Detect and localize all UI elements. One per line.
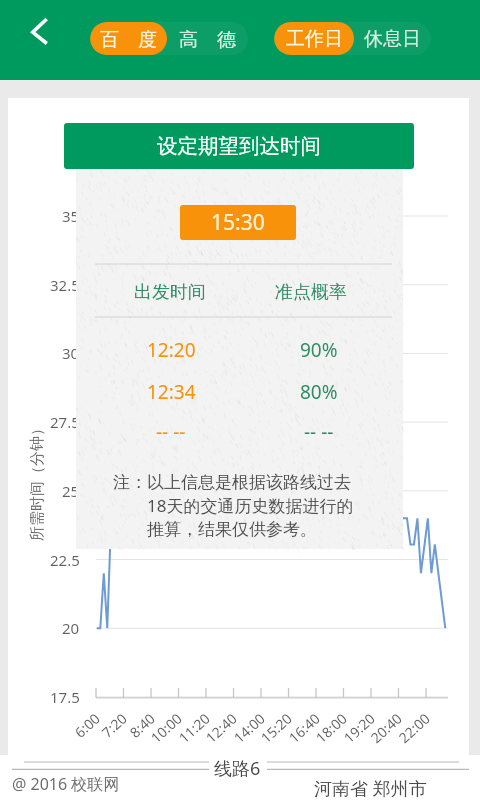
staticText: 6:00 — [49, 709, 104, 761]
staticText: 22.5 — [50, 550, 80, 570]
staticText: 20 — [62, 618, 80, 638]
staticText: 休息日 — [364, 27, 421, 51]
button[interactable]: 百 度 — [90, 22, 167, 55]
staticText: 25 — [62, 481, 80, 501]
staticText: 90% — [300, 337, 338, 363]
staticText: 80% — [300, 379, 338, 405]
staticText: 10:00 — [131, 709, 186, 761]
button[interactable]: 15:30 — [180, 205, 296, 240]
staticText: 12:40 — [186, 709, 241, 761]
staticText: 高 德 — [179, 26, 236, 52]
button[interactable]: 高 德 — [167, 22, 248, 55]
staticText: 30 — [62, 343, 80, 363]
staticText: 8:40 — [104, 709, 159, 761]
staticText: -- -- — [304, 419, 334, 445]
button[interactable]: 休息日 — [354, 22, 431, 55]
staticText: 注： — [113, 472, 147, 493]
staticText: 百 度 — [100, 26, 157, 52]
staticText: 15:20 — [241, 709, 296, 761]
staticText: 12:34 — [147, 379, 196, 405]
staticText: 20:40 — [351, 709, 406, 761]
staticText: 17.5 — [50, 687, 80, 707]
button[interactable]: 工作日 — [274, 22, 354, 55]
staticText: 22:00 — [379, 709, 434, 761]
staticText: 18:00 — [296, 709, 351, 761]
staticText: 12:20 — [147, 337, 196, 363]
staticText: 15:30 — [211, 208, 265, 237]
staticText: 设定期望到达时间 — [157, 133, 321, 159]
staticText: @ 2016 校联网 — [12, 773, 120, 795]
staticText: 16:40 — [269, 709, 324, 761]
staticText: 工作日 — [286, 27, 343, 51]
staticText: 7:20 — [76, 709, 131, 761]
staticText: 35 — [62, 206, 80, 226]
staticText: 河南省 郑州市 — [314, 776, 427, 800]
staticText: 11:20 — [159, 709, 214, 761]
staticText: 32.5 — [50, 275, 80, 295]
staticText: -- -- — [156, 419, 186, 445]
staticText: 线路6 — [214, 756, 261, 781]
button[interactable]: Back — [14, 8, 64, 58]
staticText: 19:20 — [324, 709, 379, 761]
staticText: 27.5 — [50, 412, 80, 432]
staticText: 出发时间 — [134, 281, 206, 304]
staticText: 14:00 — [214, 709, 269, 761]
staticText: 以上信息是根据该路线过去18天的交通历史数据进行的推算，结果仅供参考。 — [147, 472, 358, 540]
staticText: 准点概率 — [275, 281, 347, 304]
staticText: 所需时间（分钟） — [28, 415, 47, 547]
